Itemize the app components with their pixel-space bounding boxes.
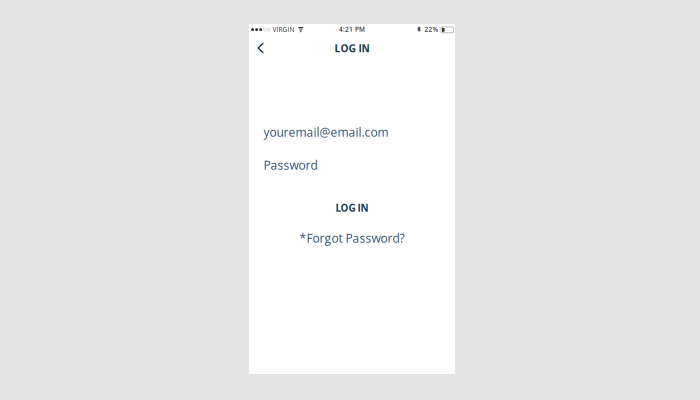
staticText: VIRGIN	[272, 25, 294, 34]
staticText: LOG IN	[335, 200, 368, 215]
staticText: Password	[264, 157, 318, 173]
button[interactable]: Back	[249, 36, 271, 60]
staticText: 4:21 PM	[339, 25, 365, 34]
staticText: 22%	[424, 25, 438, 34]
button[interactable]: LOG IN	[317, 197, 387, 217]
staticText: LOG IN	[334, 40, 369, 56]
button[interactable]: *Forgot Password?	[292, 228, 412, 248]
button[interactable]: youremail@email.com	[264, 122, 440, 142]
button[interactable]: Password	[264, 155, 440, 175]
staticText: youremail@email.com	[264, 124, 389, 140]
staticText: *Forgot Password?	[299, 230, 404, 246]
